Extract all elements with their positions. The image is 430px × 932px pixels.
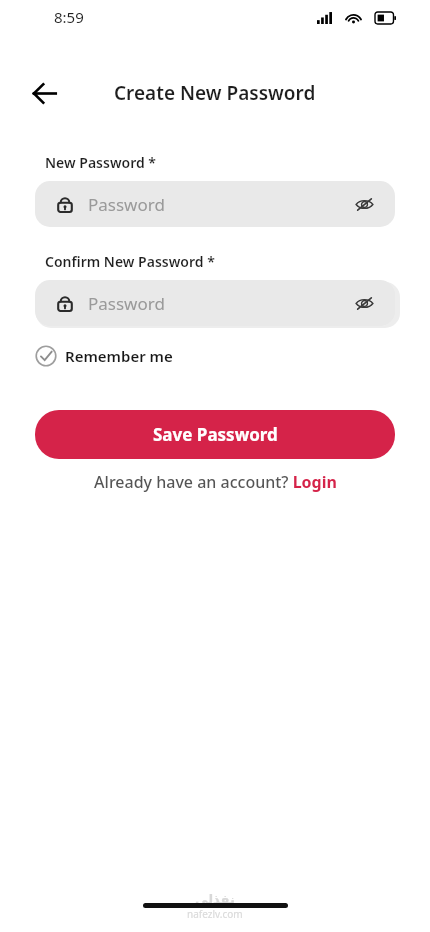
staticText: 8:59 — [54, 7, 84, 27]
button[interactable]: Remember me — [31, 342, 177, 370]
button[interactable]: Password — [35, 181, 395, 227]
staticText: Password — [88, 193, 165, 216]
staticText: Create New Password — [114, 80, 316, 106]
staticText: Confirm New Password * — [45, 252, 215, 271]
button[interactable]: Password — [35, 280, 395, 326]
button[interactable]: Back — [22, 71, 66, 115]
button[interactable]: Show password — [351, 191, 377, 217]
staticText: New Password * — [45, 153, 156, 172]
staticText: nafezly.com — [187, 907, 243, 918]
staticText: Remember me — [65, 346, 173, 366]
staticText: Already have an account? Login — [94, 471, 337, 493]
button[interactable]: Save Password — [35, 410, 395, 459]
staticText: Password — [88, 292, 165, 315]
button[interactable]: Already have an account? Login — [0, 471, 430, 493]
button[interactable]: Show password — [351, 290, 377, 316]
staticText: نفذلي — [195, 892, 235, 907]
staticText: Save Password — [153, 423, 278, 446]
